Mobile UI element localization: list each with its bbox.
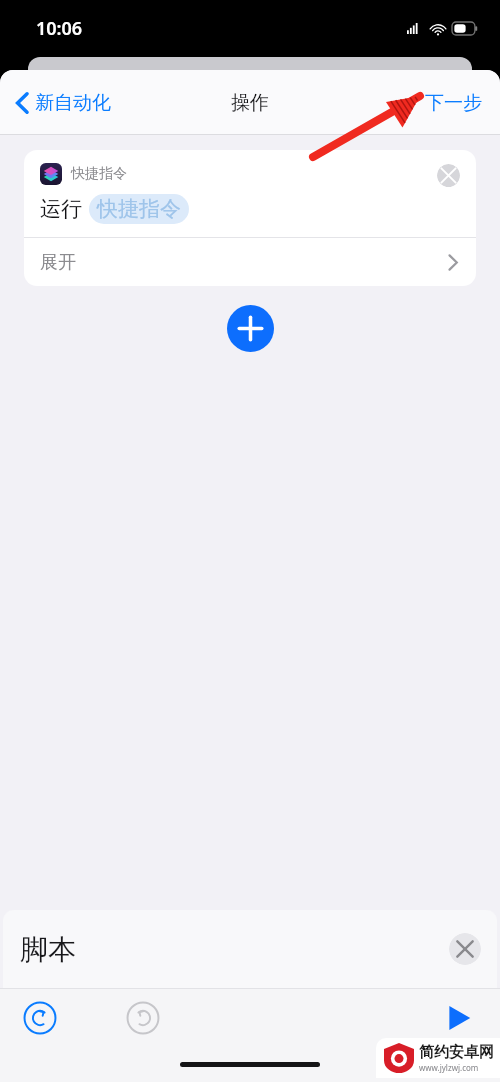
button[interactable]: 脚本 <box>3 910 497 988</box>
button[interactable]: Close script panel <box>449 933 481 965</box>
staticText: 脚本 <box>20 932 76 967</box>
button[interactable]: 下一步 <box>419 85 488 121</box>
staticText: www.jylzwj.com <box>419 1062 479 1073</box>
button[interactable]: Redo <box>125 1000 161 1036</box>
staticText: 展开 <box>40 251 76 274</box>
staticText: 下一步 <box>425 91 482 115</box>
button[interactable]: 快捷指令 <box>89 194 189 224</box>
button[interactable]: Remove action <box>437 164 460 187</box>
staticText: 快捷指令 <box>97 196 181 222</box>
button[interactable]: 新自动化 <box>12 85 115 121</box>
button[interactable]: 快捷指令 <box>24 150 476 237</box>
staticText: 10:06 <box>36 16 83 41</box>
button[interactable]: Add action <box>227 305 274 352</box>
button[interactable]: 展开 <box>24 238 476 286</box>
staticText: 快捷指令 <box>71 165 127 183</box>
staticText: 运行 <box>40 196 82 222</box>
staticText: 简约安卓网 <box>419 1043 494 1062</box>
staticText: 新自动化 <box>35 91 111 115</box>
button[interactable]: Run <box>440 1000 476 1036</box>
staticText: 操作 <box>231 91 269 115</box>
button[interactable]: Undo <box>22 1000 58 1036</box>
